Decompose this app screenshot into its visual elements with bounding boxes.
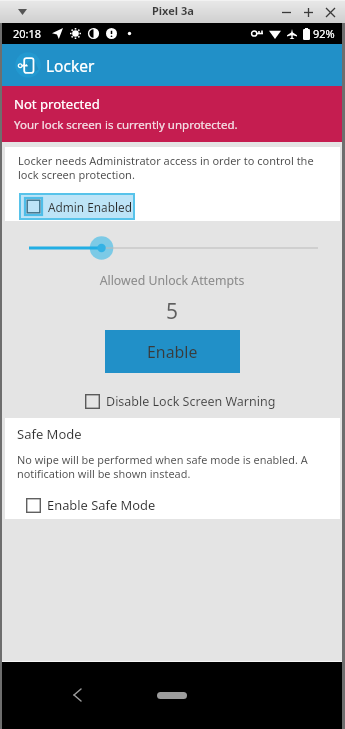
button[interactable]: Admin Enabled — [19, 193, 135, 220]
button[interactable]: Minimize — [275, 1, 297, 23]
staticText: Your lock screen is currently unprotecte… — [14, 117, 238, 133]
staticText: No wipe will be performed when safe mode… — [17, 452, 327, 481]
button[interactable]: Enable — [105, 330, 240, 373]
button[interactable]: Close — [319, 1, 341, 23]
staticText: 92% — [313, 26, 335, 41]
staticText: Admin Enabled — [48, 199, 132, 215]
staticText: 20:18 — [13, 26, 42, 41]
staticText: Locker — [46, 55, 95, 76]
staticText: Allowed Unlock Attempts — [2, 272, 342, 289]
staticText: Locker needs Administrator access in ord… — [18, 153, 327, 182]
staticText: Enable Safe Mode — [47, 496, 156, 514]
button[interactable]: Back — [64, 682, 90, 708]
staticText: Disable Lock Screen Warning — [106, 393, 276, 410]
staticText: Enable — [147, 341, 198, 363]
staticText: Safe Mode — [17, 425, 82, 443]
button[interactable]: Enable Safe Mode — [17, 494, 156, 516]
button[interactable]: Disable Lock Screen Warning — [82, 390, 279, 413]
button[interactable]: Maximize — [297, 1, 319, 23]
button[interactable]: Home — [142, 683, 202, 707]
staticText: 5 — [2, 297, 342, 326]
staticText: Pixel 3a — [152, 3, 194, 18]
button[interactable]: Menu — [12, 2, 32, 22]
staticText: Not protected — [14, 95, 100, 113]
